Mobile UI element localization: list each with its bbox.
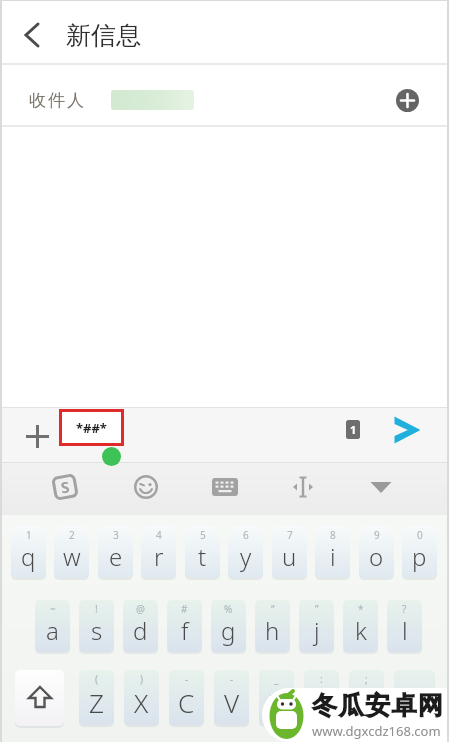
staticText: o: [369, 540, 384, 573]
staticText: l: [402, 614, 408, 647]
button[interactable]: *##*: [59, 409, 124, 446]
staticText: Z: [89, 685, 104, 720]
staticText: 收件人: [28, 90, 85, 111]
staticText: %: [224, 602, 233, 616]
staticText: j: [314, 614, 320, 647]
staticText: www.dgxcdz168.com: [312, 722, 441, 740]
staticText: g: [221, 614, 236, 647]
staticText: C: [178, 685, 195, 720]
staticText: e: [109, 540, 123, 573]
staticText: S: [59, 476, 72, 498]
staticText: a: [46, 614, 59, 647]
button[interactable]: 1: [11, 526, 46, 578]
staticText: N: [312, 685, 331, 720]
button[interactable]: *: [343, 600, 378, 652]
button[interactable]: 2: [54, 526, 89, 578]
staticText: 9: [374, 528, 380, 542]
staticText: ;: [365, 672, 368, 686]
button[interactable]: 7: [272, 526, 307, 578]
staticText: B: [268, 685, 285, 720]
staticText: 1: [350, 422, 357, 437]
button[interactable]: ”: [299, 600, 334, 652]
staticText: *##*: [76, 419, 107, 437]
staticText: k: [355, 614, 367, 647]
staticText: h: [265, 614, 280, 647]
staticText: -: [230, 672, 234, 686]
staticText: -: [185, 672, 189, 686]
button[interactable]: [15, 670, 64, 726]
staticText: @: [136, 602, 145, 616]
staticText: #: [181, 602, 188, 616]
button[interactable]: #: [167, 600, 202, 652]
staticText: f: [181, 614, 189, 647]
button[interactable]: 9: [359, 526, 394, 578]
staticText: X: [134, 685, 149, 720]
staticText: 4: [156, 528, 162, 542]
staticText: ”: [315, 602, 319, 616]
staticText: 6: [243, 528, 249, 542]
button[interactable]: S: [43, 465, 87, 509]
button[interactable]: [387, 410, 427, 450]
button[interactable]: 3: [98, 526, 133, 578]
staticText: ?: [402, 602, 407, 616]
staticText: ): [140, 672, 143, 686]
staticText: q: [21, 540, 36, 573]
button[interactable]: ): [124, 670, 159, 725]
staticText: 新信息: [66, 20, 141, 51]
staticText: 5: [200, 528, 206, 542]
button[interactable]: [396, 89, 419, 112]
button[interactable]: [0, 11, 48, 59]
button[interactable]: -: [169, 670, 204, 725]
staticText: 冬瓜安卓网: [312, 690, 445, 721]
staticText: ~: [50, 602, 56, 616]
staticText: V: [224, 685, 240, 720]
button[interactable]: @: [123, 600, 158, 652]
button[interactable]: “: [255, 600, 290, 652]
button[interactable]: (: [79, 670, 114, 725]
staticText: d: [133, 614, 148, 647]
button[interactable]: ~: [35, 600, 70, 652]
staticText: t: [198, 540, 207, 573]
button[interactable]: -: [214, 670, 249, 725]
staticText: M: [355, 685, 378, 720]
staticText: *: [358, 602, 364, 616]
staticText: 0: [417, 528, 423, 542]
button[interactable]: ;: [349, 670, 384, 725]
staticText: :: [320, 672, 323, 686]
button[interactable]: [124, 465, 168, 509]
button[interactable]: [18, 417, 56, 455]
staticText: 1: [26, 528, 32, 542]
staticText: _: [274, 672, 279, 686]
button[interactable]: 6: [228, 526, 263, 578]
staticText: i: [330, 540, 336, 573]
button[interactable]: 0: [402, 526, 437, 578]
button[interactable]: [394, 670, 435, 725]
staticText: 8: [330, 528, 336, 542]
button[interactable]: 4: [141, 526, 176, 578]
button[interactable]: 5: [185, 526, 220, 578]
button[interactable]: ?: [387, 600, 422, 652]
staticText: u: [282, 540, 297, 573]
staticText: s: [91, 614, 103, 647]
button[interactable]: [281, 465, 325, 509]
button[interactable]: !: [79, 600, 114, 652]
button[interactable]: _: [259, 670, 294, 725]
staticText: y: [240, 540, 252, 573]
staticText: 2: [69, 528, 75, 542]
button[interactable]: [359, 465, 403, 509]
staticText: r: [154, 540, 164, 573]
staticText: (: [95, 672, 98, 686]
button[interactable]: :: [304, 670, 339, 725]
button[interactable]: [203, 465, 247, 509]
button[interactable]: %: [211, 600, 246, 652]
staticText: p: [412, 540, 427, 573]
staticText: 3: [113, 528, 119, 542]
staticText: w: [63, 540, 81, 573]
staticText: 7: [287, 528, 293, 542]
staticText: “: [271, 602, 275, 616]
button[interactable]: 8: [315, 526, 350, 578]
staticText: !: [95, 602, 98, 616]
